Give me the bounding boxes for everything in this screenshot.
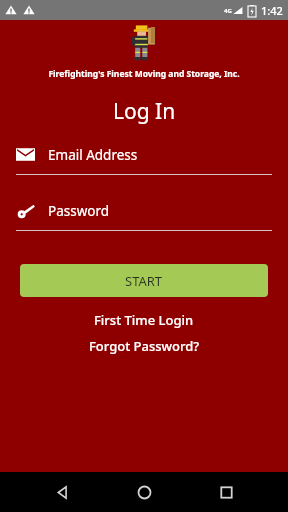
button[interactable]: Back bbox=[42, 472, 82, 512]
button[interactable]: START bbox=[20, 264, 268, 297]
staticText: Forgot Password? bbox=[89, 337, 200, 355]
button[interactable]: Recent apps bbox=[206, 472, 246, 512]
staticText: Email Address bbox=[48, 146, 138, 164]
button[interactable]: Home bbox=[124, 472, 164, 512]
other: Password bbox=[16, 201, 35, 220]
button[interactable]: First Time Login bbox=[86, 310, 202, 330]
staticText: 1:42 bbox=[261, 3, 283, 18]
staticText: Log In bbox=[113, 97, 176, 126]
staticText: START bbox=[125, 272, 163, 290]
staticText: Password bbox=[48, 202, 110, 220]
staticText: Firefighting's Finest Moving and Storage… bbox=[48, 68, 240, 80]
button[interactable]: Password bbox=[16, 201, 272, 231]
button[interactable]: Email bbox=[16, 145, 272, 175]
staticText: First Time Login bbox=[94, 311, 194, 329]
staticText: 4G bbox=[224, 7, 232, 15]
other: Email bbox=[16, 145, 35, 164]
button[interactable]: Forgot Password? bbox=[81, 336, 208, 356]
